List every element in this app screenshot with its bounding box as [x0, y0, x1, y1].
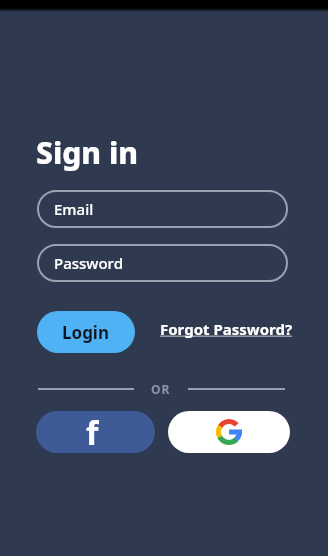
staticText: Login [62, 321, 110, 344]
button[interactable]: f [36, 411, 155, 453]
button[interactable] [168, 411, 290, 453]
staticText: Email [54, 199, 94, 219]
button[interactable]: Password [37, 244, 288, 282]
staticText: f [86, 411, 99, 453]
staticText: OR [151, 381, 171, 397]
button[interactable]: Login [37, 311, 135, 353]
staticText: Sign in [36, 132, 138, 173]
button[interactable]: Email [37, 190, 288, 228]
button[interactable]: Forgot Password? [158, 317, 295, 341]
staticText: Password [54, 253, 123, 273]
staticText: Forgot Password? [160, 319, 293, 339]
